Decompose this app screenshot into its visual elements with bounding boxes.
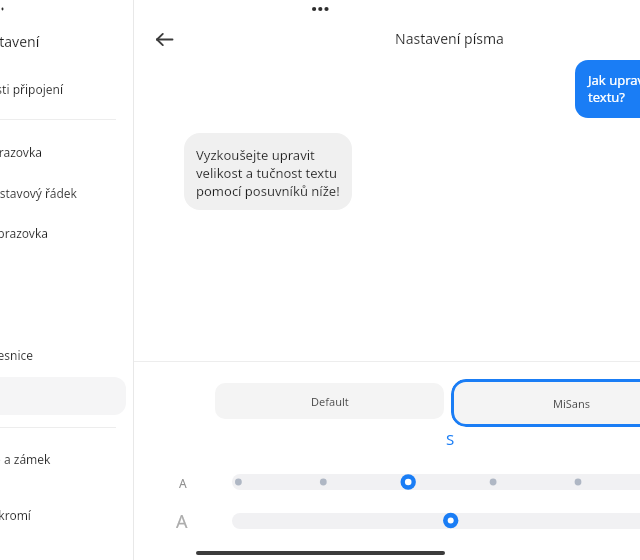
staticText: Zamykací obrazovka <box>0 225 49 241</box>
staticText: A <box>179 475 187 491</box>
button[interactable]: Stav a stavový řádek <box>0 178 90 208</box>
button[interactable]: Default <box>215 383 444 419</box>
button[interactable]: MiSans <box>451 379 640 427</box>
staticText: Stav a stavový řádek <box>0 185 77 201</box>
button[interactable]: Soukromí <box>0 500 44 530</box>
button[interactable]: Jak upravit velikost textu? <box>575 60 640 118</box>
staticText: MiSans <box>553 396 591 411</box>
staticText: S <box>446 429 455 449</box>
staticText: Default <box>311 394 349 409</box>
button[interactable] <box>232 513 640 529</box>
button[interactable] <box>232 474 640 490</box>
staticText: Jazyk a klávesnice <box>0 347 34 363</box>
staticText: Soukromí <box>0 507 31 523</box>
staticText: Obrazovka <box>0 144 43 160</box>
button[interactable]: Heslo a zámek <box>0 444 63 474</box>
staticText: Heslo a zámek <box>0 451 51 467</box>
staticText: A <box>176 509 188 534</box>
button[interactable]: Obrazovka <box>0 137 55 167</box>
staticText: Možnosti připojení <box>0 81 64 97</box>
staticText: Nastavení písma <box>395 29 504 48</box>
staticText: Nastavení <box>0 32 40 51</box>
button[interactable]: Možnosti připojení <box>0 74 76 104</box>
staticText: Vyzkoušejte upravit velikost a tučnost t… <box>196 146 340 200</box>
staticText: Jak upravit velikost textu? <box>588 71 640 106</box>
button[interactable]: Zamykací obrazovka <box>0 218 61 248</box>
button[interactable]: Back <box>148 23 180 55</box>
button[interactable]: Jazyk a klávesnice <box>0 340 47 370</box>
